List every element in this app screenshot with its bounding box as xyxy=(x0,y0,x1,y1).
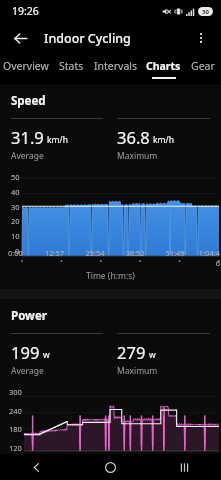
button[interactable]: Overview xyxy=(0,54,52,84)
staticText: 0:00 xyxy=(8,248,34,258)
staticText: 36.8 xyxy=(117,126,150,148)
staticText: Gear xyxy=(191,59,215,73)
staticText: 300 xyxy=(9,387,22,397)
staticText: Maximum xyxy=(117,365,158,377)
staticText: Average xyxy=(11,365,44,377)
staticText: Stats xyxy=(59,59,84,73)
staticText: 51:49 xyxy=(155,248,195,258)
staticText: 0 xyxy=(15,246,20,256)
staticText: 1:04:46 xyxy=(195,248,220,268)
staticText: 19:26 xyxy=(12,4,39,18)
staticText: 30 xyxy=(202,8,209,16)
button[interactable]: More options xyxy=(187,24,215,52)
staticText: Intervals xyxy=(94,59,138,73)
button[interactable]: Charts xyxy=(141,54,185,84)
button[interactable]: Recent apps xyxy=(147,454,221,480)
button[interactable]: Back xyxy=(6,24,34,52)
button[interactable]: Intervals xyxy=(91,54,141,84)
staticText: Time (h:m:s) xyxy=(86,270,135,282)
staticText: 50 xyxy=(11,172,20,182)
staticText: 180 xyxy=(9,424,22,434)
button[interactable]: Home xyxy=(73,454,147,480)
staticText: km/h xyxy=(153,134,174,146)
staticText: 20 xyxy=(11,216,20,226)
staticText: 199 xyxy=(11,341,40,363)
staticText: Overview xyxy=(3,59,49,73)
staticText: km/h xyxy=(47,134,68,146)
staticText: 10 xyxy=(11,231,20,241)
staticText: 25:54 xyxy=(75,248,115,258)
staticText: Indoor Cycling xyxy=(44,30,131,47)
staticText: w xyxy=(149,349,156,361)
button[interactable]: Stats xyxy=(52,54,91,84)
staticText: 12:57 xyxy=(34,248,75,258)
staticText: 30 xyxy=(11,202,20,212)
staticText: w xyxy=(43,349,50,361)
staticText: 240 xyxy=(9,406,22,416)
staticText: 120 xyxy=(9,443,22,453)
button[interactable]: Gear xyxy=(185,54,221,84)
staticText: 38:52 xyxy=(115,248,155,258)
staticText: Maximum xyxy=(117,150,158,162)
staticText: 279 xyxy=(117,341,146,363)
staticText: Power xyxy=(11,308,47,324)
staticText: Speed xyxy=(11,93,46,109)
button[interactable]: Back xyxy=(0,454,73,480)
staticText: Charts xyxy=(146,59,181,73)
staticText: 40 xyxy=(11,187,20,197)
staticText: 31.9 xyxy=(11,126,44,148)
staticText: Average xyxy=(11,150,44,162)
